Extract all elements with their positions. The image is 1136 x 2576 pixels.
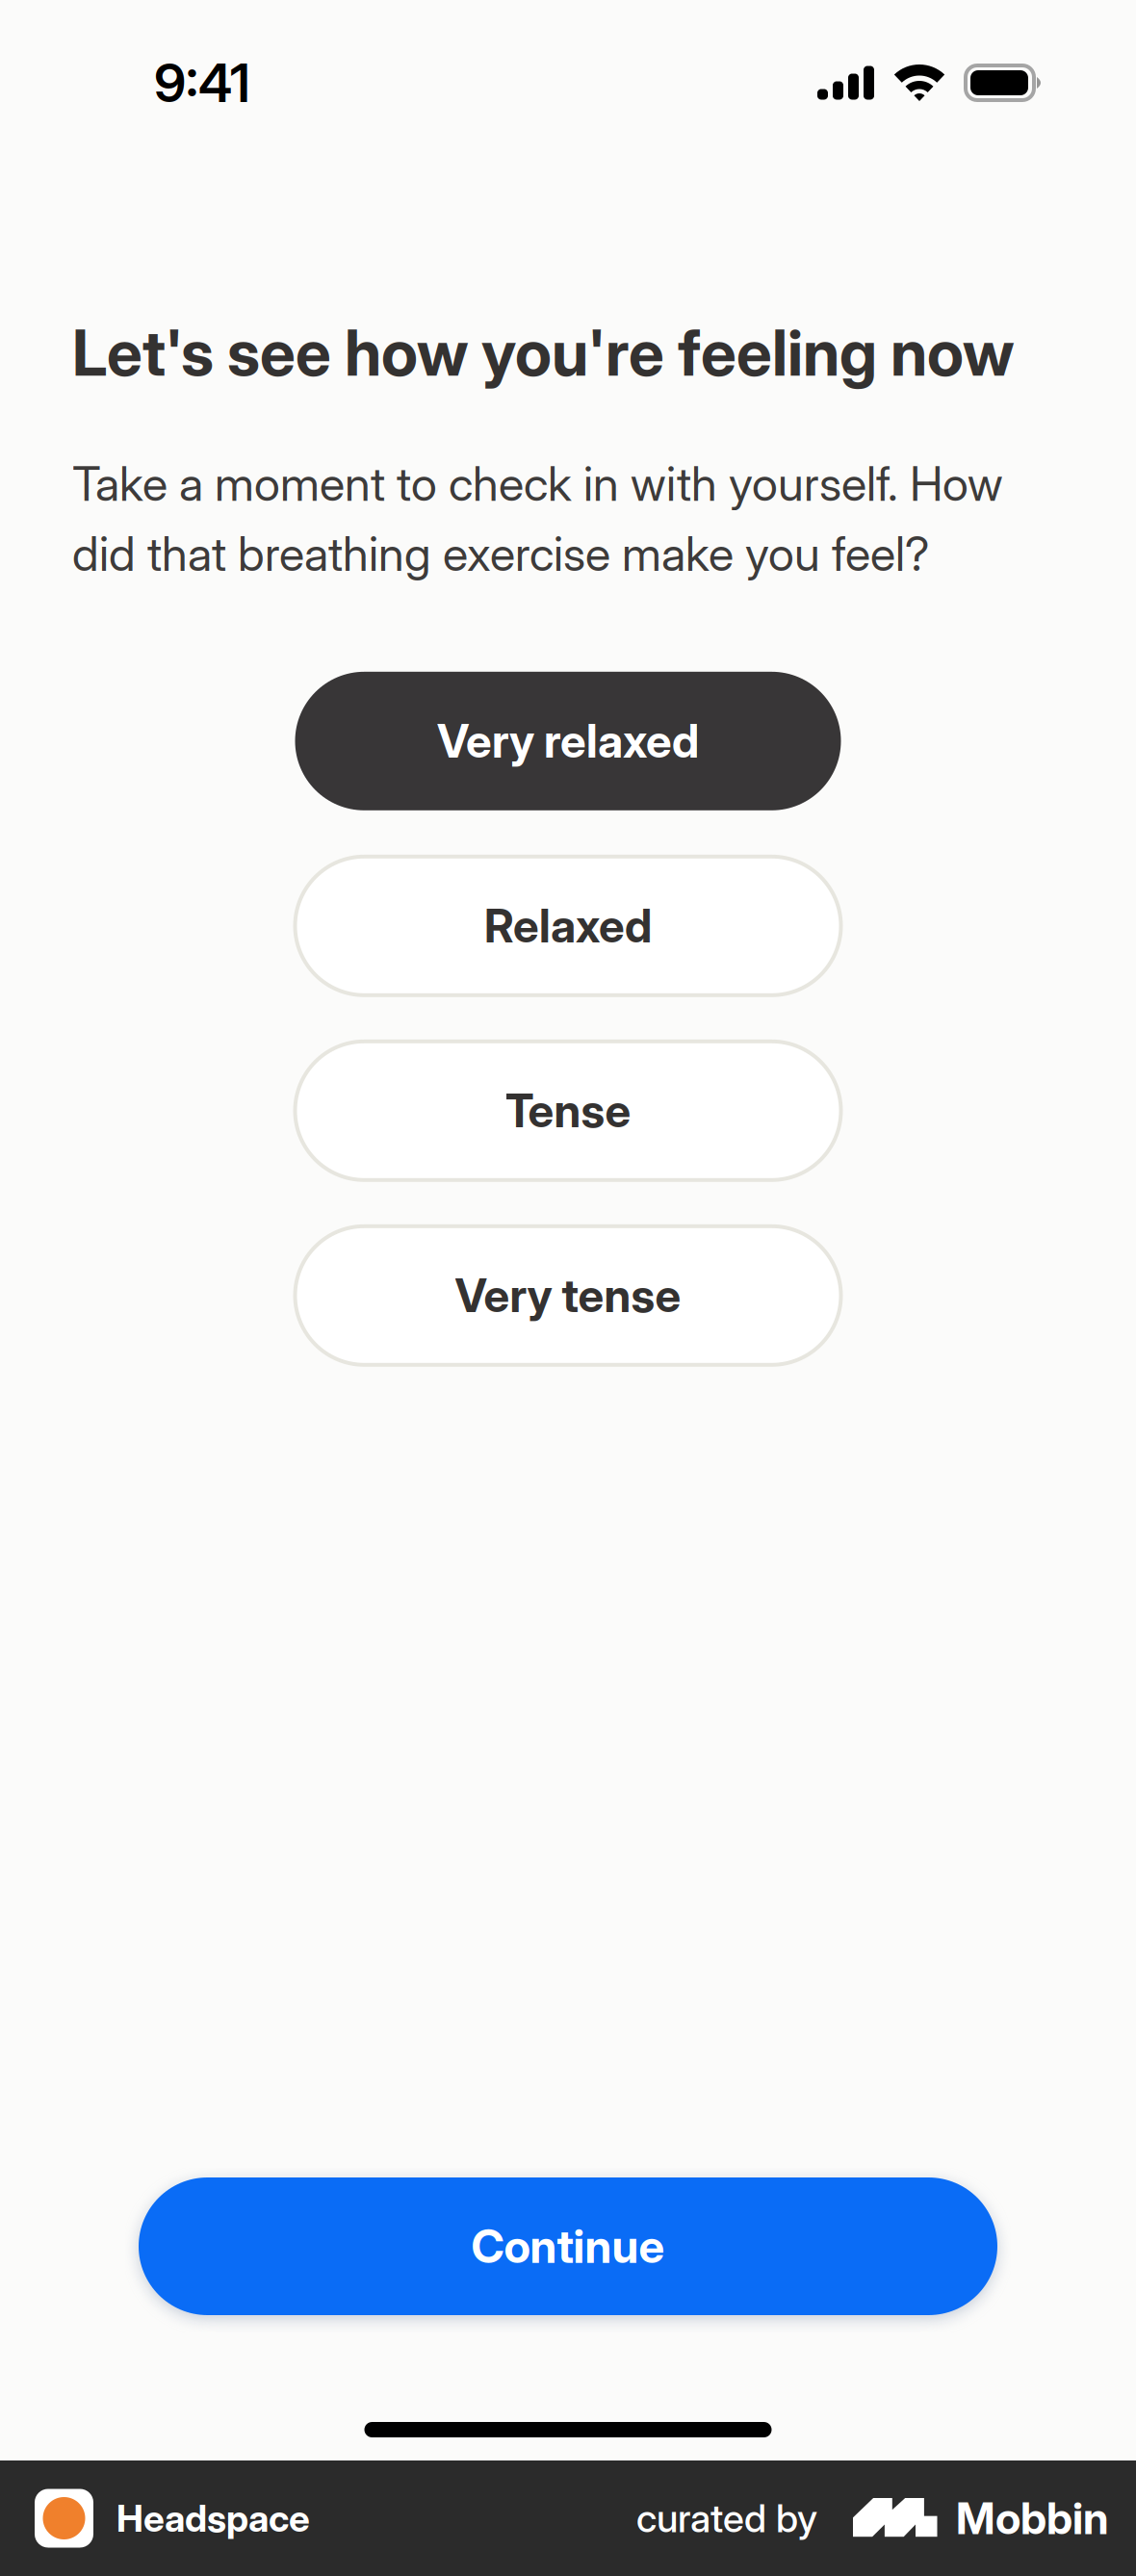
button[interactable]: Continue	[139, 2177, 997, 2315]
staticText: Continue	[471, 2219, 665, 2274]
staticText: Headspace	[116, 2496, 310, 2541]
staticText: Take a moment to check in with yourself.…	[72, 455, 1003, 512]
staticText: Very relaxed	[437, 714, 699, 769]
button[interactable]: Very relaxed	[295, 672, 841, 810]
staticText: Tense	[505, 1083, 631, 1138]
button[interactable]: Relaxed	[295, 857, 841, 995]
staticText: curated by	[636, 2495, 817, 2542]
staticText: Very tense	[455, 1268, 681, 1323]
staticText: Relaxed	[484, 898, 652, 953]
staticText: did that breathing exercise make you fee…	[72, 526, 929, 582]
staticText: Let's see how you're feeling now	[72, 315, 1014, 391]
button[interactable]: Tense	[295, 1041, 841, 1180]
staticText: 9:41	[154, 51, 250, 115]
button[interactable]: Very tense	[295, 1226, 841, 1365]
staticText: Mobbin	[956, 2492, 1109, 2545]
